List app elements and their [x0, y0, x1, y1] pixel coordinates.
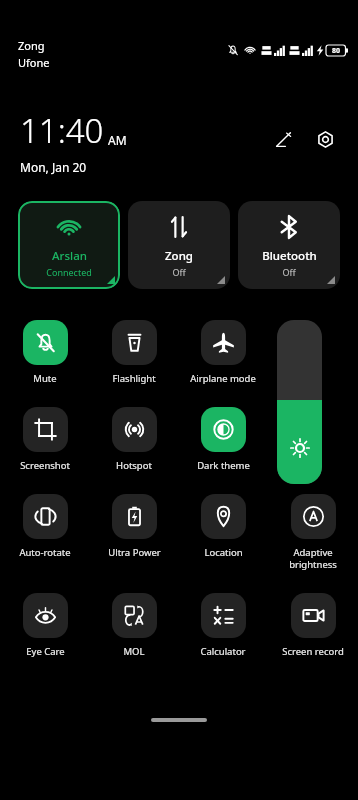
staticText: Bluetooth — [262, 248, 317, 264]
staticText: Airplane mode — [190, 372, 256, 385]
staticText: Location — [204, 546, 243, 559]
staticText: Mon, Jan 20 — [20, 159, 87, 175]
other: Auto rotate — [23, 494, 68, 539]
staticText: Off — [282, 266, 296, 278]
staticText: AM — [108, 132, 127, 148]
other: Location — [201, 494, 246, 539]
other: Adaptive brightness — [291, 494, 336, 539]
other: Eye Care — [23, 593, 68, 638]
staticText: Off — [172, 266, 186, 278]
other: Dark theme — [201, 407, 246, 452]
staticText: Ufone — [18, 55, 50, 70]
staticText: Arslan — [52, 248, 87, 264]
button[interactable]: MOL — [93, 593, 175, 658]
button[interactable]: Arslan — [18, 201, 120, 289]
button[interactable]: Mute — [4, 320, 86, 385]
button[interactable]: Edit — [266, 122, 300, 156]
other: Mute — [23, 320, 68, 365]
button[interactable]: Settings — [308, 122, 342, 156]
button[interactable]: Flashlight — [93, 320, 175, 385]
button[interactable]: Brightness — [277, 320, 322, 484]
staticText: Hotspot — [116, 459, 152, 472]
staticText: Dark theme — [197, 459, 250, 472]
button[interactable]: Auto rotate — [4, 494, 86, 559]
staticText: Auto-rotate — [19, 546, 71, 559]
staticText: Mute — [33, 372, 57, 385]
button[interactable]: Calculator — [182, 593, 264, 658]
button[interactable]: Zong — [128, 201, 230, 289]
staticText: Zong — [165, 248, 193, 264]
staticText: Screen record — [282, 645, 344, 658]
button[interactable]: Screenshot — [4, 407, 86, 472]
button[interactable]: Hotspot — [93, 407, 175, 472]
staticText: Adaptive brightness — [289, 546, 337, 571]
staticText: Calculator — [200, 645, 246, 658]
button[interactable]: Eye Care — [4, 593, 86, 658]
button[interactable]: Airplane mode — [182, 320, 264, 385]
button[interactable]: Dark theme — [182, 407, 264, 472]
staticText: Flashlight — [112, 372, 156, 385]
button[interactable]: Screen record — [272, 593, 354, 658]
other: Screenshot — [23, 407, 68, 452]
other: Screen record — [291, 593, 336, 638]
button[interactable]: Bluetooth — [238, 201, 340, 289]
button[interactable]: Adaptive brightness — [272, 494, 354, 571]
staticText: Connected — [46, 266, 92, 278]
button[interactable]: Location — [182, 494, 264, 559]
staticText: Zong — [18, 38, 45, 53]
staticText: Eye Care — [26, 645, 65, 658]
staticText: MOL — [123, 645, 145, 658]
other: Ultra Power — [112, 494, 157, 539]
other: Airplane mode — [201, 320, 246, 365]
staticText: 80 — [332, 46, 341, 56]
staticText: 11:40 — [20, 108, 104, 153]
staticText: Ultra Power — [108, 546, 161, 559]
other: Hotspot — [112, 407, 157, 452]
other: MOL — [112, 593, 157, 638]
button[interactable]: Ultra Power — [93, 494, 175, 559]
other: Calculator — [201, 593, 246, 638]
other: Flashlight — [112, 320, 157, 365]
staticText: Screenshot — [20, 459, 70, 472]
